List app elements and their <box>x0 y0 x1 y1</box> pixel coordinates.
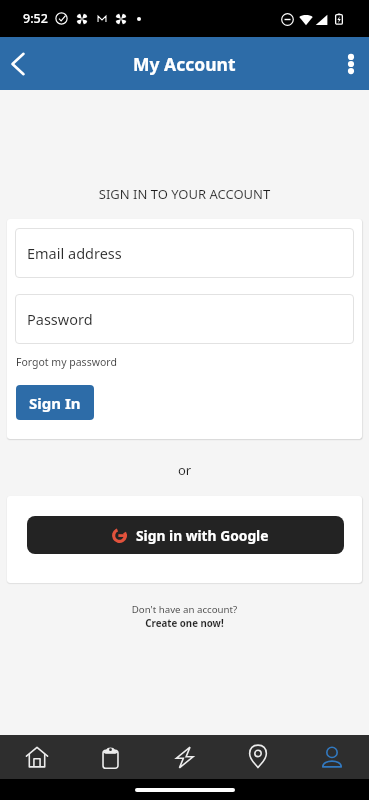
button[interactable]: Deals <box>147 735 221 779</box>
staticText: Sign in with Google <box>136 526 269 545</box>
button[interactable]: Email address <box>15 228 354 278</box>
button[interactable]: Sign in with Google <box>27 516 344 554</box>
staticText: Password <box>27 309 93 329</box>
staticText: 9:52 <box>23 10 48 27</box>
staticText: SIGN IN TO YOUR ACCOUNT <box>0 185 369 203</box>
button[interactable]: Orders <box>73 735 147 779</box>
button[interactable]: Account <box>295 735 369 779</box>
button[interactable]: Password <box>15 294 354 344</box>
button[interactable]: Home <box>0 735 73 779</box>
staticText: Sign In <box>29 393 81 413</box>
button[interactable]: More options <box>333 46 369 82</box>
staticText: Don't have an account? <box>0 603 369 616</box>
staticText: My Account <box>133 52 236 76</box>
staticText: Email address <box>27 243 122 263</box>
button[interactable]: Sign In <box>16 385 94 420</box>
button[interactable]: Back <box>0 46 36 82</box>
staticText: or <box>0 461 369 479</box>
button[interactable]: Create one now! <box>0 617 369 630</box>
button[interactable]: Stores <box>221 735 295 779</box>
button[interactable]: Forgot my password <box>16 355 117 369</box>
